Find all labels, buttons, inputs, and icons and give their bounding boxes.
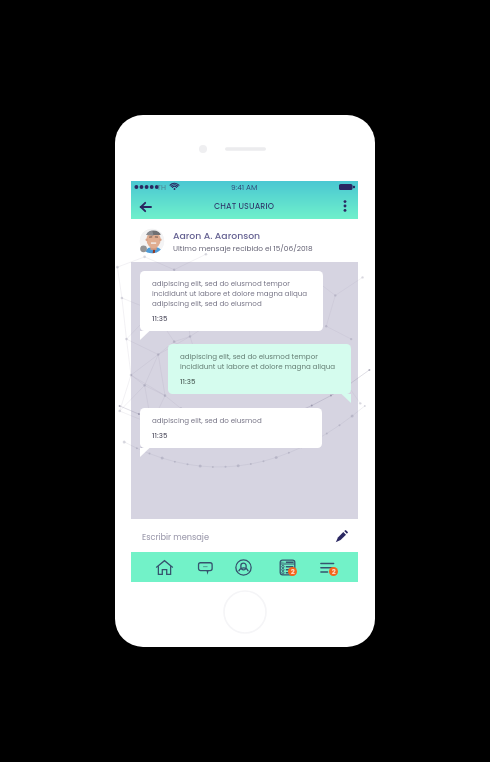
button[interactable]: Back [138, 199, 153, 214]
staticText: 9:41 AM [231, 182, 258, 192]
staticText: adipiscing elit, sed do eiusmod [152, 416, 262, 426]
button[interactable]: More options [338, 199, 352, 213]
button[interactable]: Write message [334, 529, 349, 544]
staticText: CHAT USUARIO [214, 201, 275, 212]
staticText: TH [157, 182, 166, 192]
staticText: 11:35 [180, 377, 196, 387]
button[interactable]: adipiscing elit, sed do eiusmod tempor [168, 344, 351, 394]
staticText: incididunt ut labore et dolore magna ali… [180, 362, 336, 372]
button[interactable]: Home [153, 556, 176, 580]
button[interactable]: Escribir mensaje [131, 519, 358, 552]
staticText: 11:35 [152, 314, 168, 324]
staticText: 11:35 [152, 431, 168, 441]
staticText: adipiscing elit, sed do eiusmod tempor [180, 352, 318, 362]
button[interactable]: adipiscing elit, sed do eiusmod tempor [140, 271, 323, 331]
staticText: 2 [291, 567, 295, 576]
button[interactable]: Forms [276, 556, 299, 580]
staticText: adipiscing elit, sed do eiusmod tempor [152, 279, 290, 289]
staticText: 2 [332, 567, 336, 576]
button[interactable]: Aaron A. Aaronson [131, 219, 358, 262]
staticText: adipiscing elit, sed do eiusmod [152, 299, 262, 309]
staticText: Escribir mensaje [142, 531, 209, 542]
button[interactable]: Messages [194, 556, 217, 580]
button[interactable]: Menu [317, 556, 340, 580]
button[interactable]: adipiscing elit, sed do eiusmod [140, 408, 322, 448]
button[interactable]: Profile [232, 556, 255, 580]
staticText: Aaron A. Aaronson [173, 229, 261, 242]
staticText: Ultimo mensaje recibido el 15/06/2018 [173, 243, 313, 253]
staticText: incididunt ut labore et dolore magna ali… [152, 289, 308, 299]
